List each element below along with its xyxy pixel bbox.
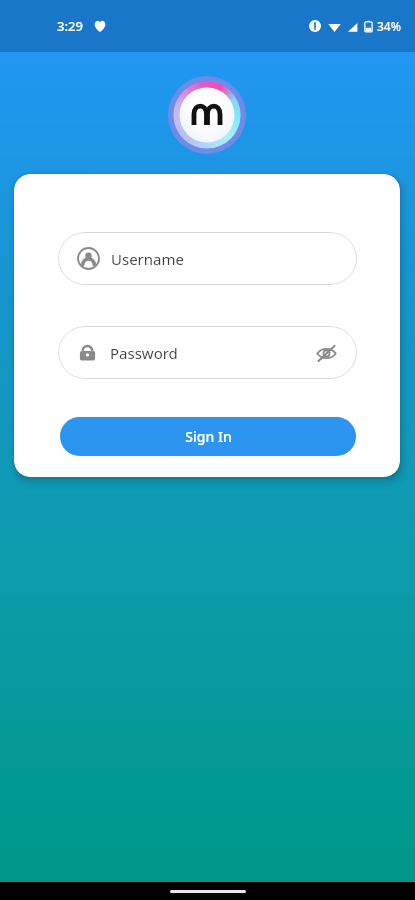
staticText: Username [111, 249, 184, 269]
button[interactable]: Username [58, 232, 357, 285]
button[interactable]: Password [58, 326, 357, 379]
button[interactable]: Sign In [60, 417, 356, 456]
staticText: Sign In [185, 427, 232, 446]
staticText: 3:29 [57, 17, 83, 35]
button[interactable]: Show password [313, 340, 339, 366]
staticText: 34% [377, 18, 401, 34]
staticText: Password [110, 343, 178, 363]
